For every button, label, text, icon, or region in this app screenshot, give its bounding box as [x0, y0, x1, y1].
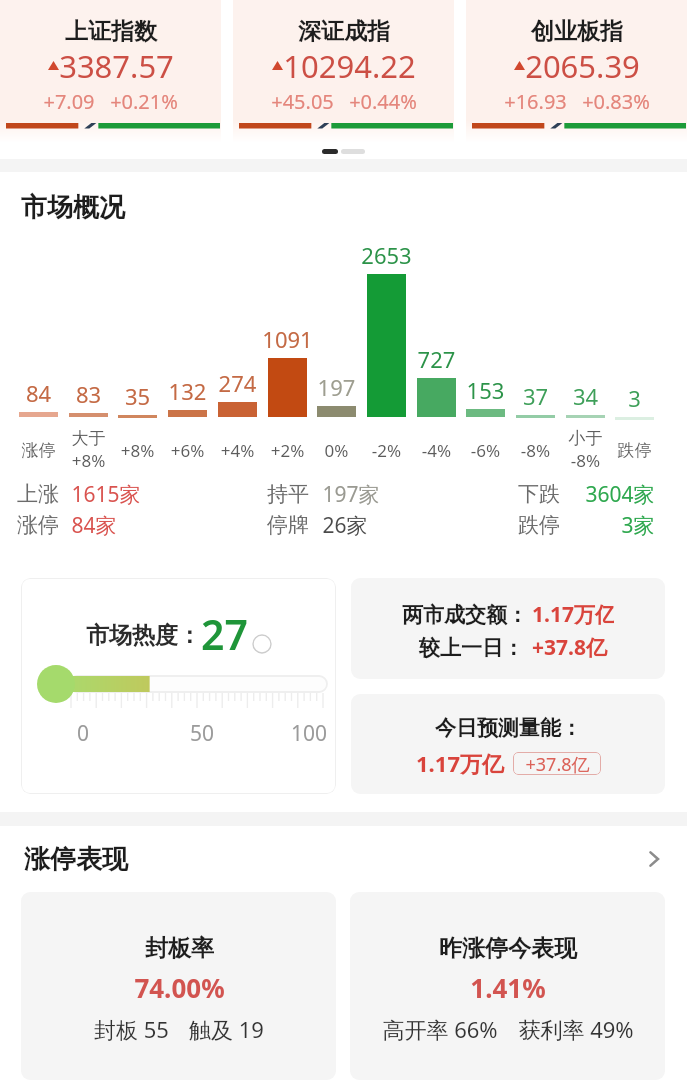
staticText: 0	[68, 719, 98, 748]
staticText: 涨停	[17, 512, 59, 538]
staticText: -4%	[401, 439, 472, 462]
staticText: +6%	[152, 439, 223, 462]
staticText: 创业板指	[531, 17, 623, 46]
staticText: 市场热度：	[86, 621, 201, 650]
staticText: 较上一日：	[419, 635, 524, 661]
staticText: 100	[287, 719, 331, 748]
staticText: 26家	[322, 511, 368, 540]
staticText: 下跌	[518, 481, 560, 507]
staticText: 获利率 49%	[518, 1014, 634, 1044]
staticText: 84家	[71, 511, 117, 540]
button[interactable]: 今日预测量能：	[351, 694, 665, 794]
staticText: 封板率	[145, 934, 214, 963]
staticText: 727	[397, 344, 476, 374]
staticText: -2%	[351, 439, 422, 462]
staticText: 50	[185, 719, 219, 748]
staticText: 35	[98, 381, 177, 411]
staticText: 1615家	[71, 480, 141, 509]
staticText: 74.00%	[134, 970, 225, 1005]
staticText: 小于	[550, 428, 621, 449]
staticText: 触及 19	[189, 1014, 264, 1044]
button[interactable]: 封板率	[21, 892, 336, 1080]
staticText: +0.21%	[110, 88, 178, 115]
button[interactable]: 两市成交额：	[351, 578, 665, 679]
staticText: 上涨	[17, 481, 59, 507]
staticText: +7.09	[43, 88, 95, 115]
button[interactable]: 上证指数	[0, 0, 221, 143]
staticText: 两市成交额：	[402, 602, 524, 628]
staticText: +37.8亿	[532, 633, 607, 662]
staticText: 132	[148, 376, 227, 406]
staticText: 3家	[621, 511, 655, 540]
staticText: 3387.57	[59, 45, 174, 87]
staticText: -6%	[450, 439, 521, 462]
staticText: 涨停表现	[24, 843, 128, 876]
staticText: +16.93	[504, 88, 567, 115]
staticText: 2653	[347, 240, 426, 270]
staticText: +0.83%	[582, 88, 650, 115]
staticText: 跌停	[518, 512, 560, 538]
staticText: +45.05	[271, 88, 334, 115]
staticText: 34	[546, 381, 625, 411]
staticText: 大于	[53, 428, 124, 449]
staticText: 0%	[301, 439, 372, 462]
staticText: 停牌	[267, 512, 309, 538]
staticText: 上证指数	[65, 17, 157, 46]
staticText: +0.44%	[349, 88, 417, 115]
staticText: +37.8亿	[525, 752, 590, 775]
staticText: +8%	[102, 439, 173, 462]
staticText: 市场概况	[21, 191, 125, 224]
staticText: 涨停	[3, 440, 74, 461]
staticText: +4%	[202, 439, 273, 462]
staticText: 197	[297, 372, 376, 402]
other: 帮助	[252, 634, 272, 654]
button[interactable]: 涨停表现	[24, 839, 665, 879]
staticText: 83	[49, 379, 128, 409]
staticText: 10294.22	[283, 45, 416, 87]
staticText: 1.41%	[470, 970, 546, 1005]
staticText: -8%	[500, 439, 571, 462]
staticText: 深证成指	[298, 17, 390, 46]
staticText: +8%	[53, 449, 124, 472]
staticText: 84	[0, 378, 78, 408]
button[interactable]: 市场热度：	[21, 578, 336, 794]
staticText: 3604家	[585, 480, 655, 509]
staticText: 跌停	[599, 440, 670, 461]
staticText: 3	[595, 383, 674, 413]
staticText: 1.17万亿	[416, 748, 504, 778]
staticText: 2065.39	[525, 45, 640, 87]
staticText: 197家	[322, 480, 380, 509]
staticText: 昨涨停今表现	[439, 934, 577, 963]
staticText: +2%	[252, 439, 323, 462]
staticText: 27	[201, 606, 248, 662]
staticText: 高开率 66%	[382, 1014, 498, 1044]
staticText: 今日预测量能：	[435, 715, 582, 741]
staticText: 封板 55	[94, 1014, 169, 1044]
staticText: 1.17万亿	[532, 600, 614, 629]
staticText: 274	[198, 368, 277, 398]
staticText: -8%	[550, 449, 621, 472]
button[interactable]: 创业板指	[466, 0, 687, 143]
staticText: 153	[446, 375, 525, 405]
other: 查看更多	[643, 848, 665, 870]
staticText: 持平	[267, 481, 309, 507]
button[interactable]: 深证成指	[233, 0, 454, 143]
button[interactable]: 昨涨停今表现	[350, 892, 665, 1080]
staticText: 1091	[248, 324, 327, 354]
staticText: 37	[496, 381, 575, 411]
